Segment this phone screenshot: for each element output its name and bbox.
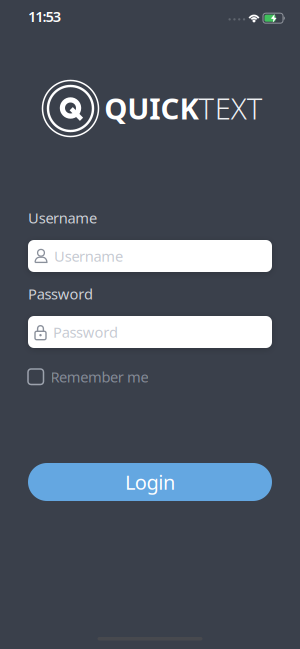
staticText: TEXT bbox=[198, 88, 263, 127]
staticText: Username bbox=[28, 208, 97, 227]
staticText: Remember me bbox=[50, 367, 148, 386]
staticText: Username bbox=[54, 246, 123, 266]
button[interactable]: Username bbox=[28, 240, 272, 272]
staticText: Password bbox=[53, 322, 118, 342]
staticText: Password bbox=[28, 284, 93, 303]
button[interactable]: Remember me bbox=[28, 367, 148, 386]
button[interactable]: Login bbox=[28, 463, 272, 501]
staticText: Login bbox=[125, 469, 175, 495]
button[interactable]: Password bbox=[28, 316, 272, 348]
staticText: 11:53 bbox=[28, 6, 61, 26]
staticText: QUICK bbox=[104, 88, 199, 127]
